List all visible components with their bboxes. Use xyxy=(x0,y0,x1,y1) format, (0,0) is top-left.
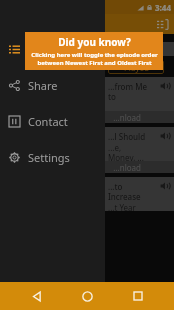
other: Episodes xyxy=(9,44,20,55)
staticText: ...nload xyxy=(105,162,142,173)
staticText: ...to Increase xyxy=(108,181,154,202)
button[interactable]: Did you know? xyxy=(25,32,163,70)
button[interactable]: Recents xyxy=(124,282,152,310)
button[interactable]: ...l Should xyxy=(105,127,174,161)
button[interactable]: Toggle episode order xyxy=(153,15,171,33)
staticText: Share xyxy=(28,78,58,93)
staticText: Contact xyxy=(28,114,68,129)
button[interactable]: Play xyxy=(158,79,172,93)
staticText: Did you know? xyxy=(58,35,131,49)
button[interactable]: Play xyxy=(158,129,172,143)
button[interactable]: Episodes xyxy=(0,38,105,60)
button[interactable] xyxy=(105,42,174,56)
staticText: Played xyxy=(124,62,149,73)
button[interactable]: ...nload xyxy=(105,111,174,123)
staticText: Settings xyxy=(28,150,70,165)
staticText: 3:44 xyxy=(155,2,171,13)
staticText: ...t Year xyxy=(108,202,136,211)
button[interactable]: Back xyxy=(23,282,51,310)
button[interactable]: ...nload xyxy=(105,161,174,173)
button[interactable]: Play xyxy=(158,179,172,193)
button[interactable]: Settings xyxy=(0,146,105,168)
button[interactable]: Played xyxy=(108,60,164,74)
staticText: ...e, Money, ... xyxy=(108,142,154,161)
button[interactable]: Share xyxy=(0,74,105,96)
button[interactable]: Home xyxy=(73,282,101,310)
staticText: ...from Me to xyxy=(108,81,154,102)
staticText: ...l Should xyxy=(108,131,146,142)
button[interactable]: ...from Me to xyxy=(105,77,174,111)
staticText: ...nload xyxy=(105,112,142,123)
button[interactable]: Contact xyxy=(0,110,105,132)
button[interactable]: ...to Increase xyxy=(105,177,174,211)
staticText: Clicking here will toggle the episode or… xyxy=(31,51,158,67)
